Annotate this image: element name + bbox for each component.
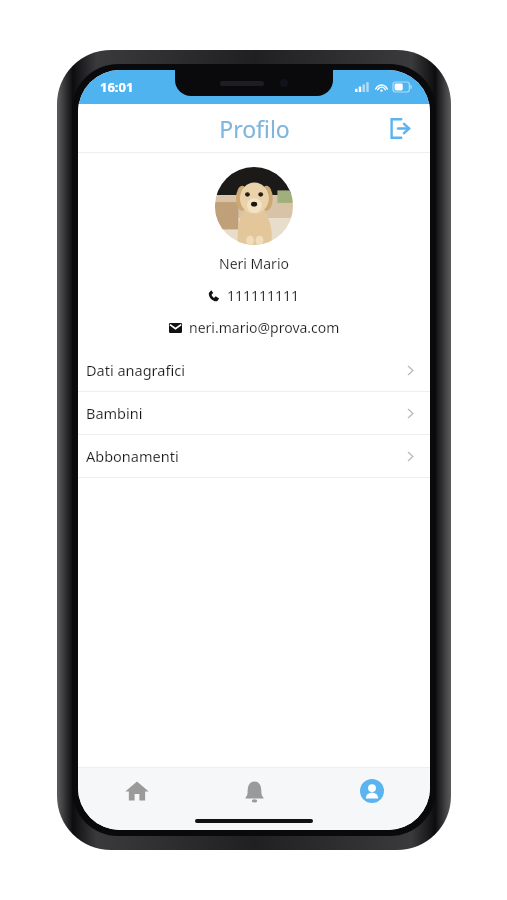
button[interactable]: Bambini (78, 392, 430, 434)
staticText: Bambini (86, 403, 143, 423)
button[interactable]: Home (78, 768, 196, 814)
button[interactable]: Notifiche (196, 768, 313, 814)
button[interactable]: Dati anagrafici (78, 349, 430, 391)
staticText: Neri Mario (219, 254, 289, 273)
button[interactable]: Logout (378, 108, 418, 148)
button[interactable]: Abbonamenti (78, 435, 430, 477)
staticText: Abbonamenti (86, 446, 179, 466)
staticText: Dati anagrafici (86, 360, 185, 380)
staticText: neri.mario@prova.com (189, 318, 340, 337)
staticText: Profilo (219, 113, 290, 144)
staticText: 16:01 (100, 78, 134, 96)
button[interactable]: Profilo (313, 768, 430, 814)
staticText: 111111111 (227, 286, 300, 305)
